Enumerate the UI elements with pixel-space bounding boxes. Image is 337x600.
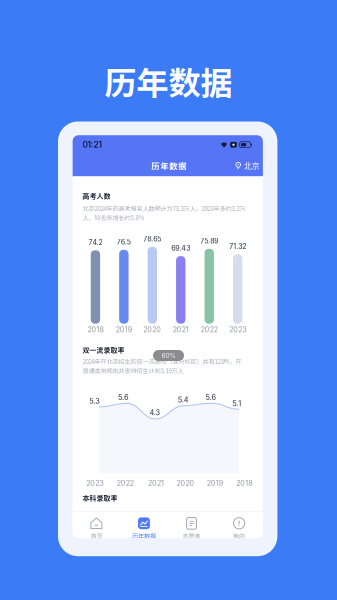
staticText: 首页 [90,531,102,540]
staticText: 2020 [143,325,161,334]
button[interactable]: 志愿表 [168,512,215,544]
staticText: 5.3 [89,397,100,405]
button[interactable]: 我的 [215,512,263,544]
staticText: 76.5 [117,238,131,246]
staticText: 2022 [117,479,134,487]
button[interactable]: 北京 [234,156,261,171]
staticText: 我的 [233,531,245,540]
staticText: 2022 [201,325,218,334]
staticText: 高考人数 [82,191,110,201]
staticText: 74.2 [88,238,102,247]
staticText: 69.43 [171,244,190,252]
staticText: 5.1 [232,399,241,408]
staticText: 5.4 [178,395,189,404]
staticText: 2018 [236,479,252,487]
staticText: 71.32 [229,242,246,251]
staticText: 2019 [116,325,132,334]
staticText: 北京 [244,160,260,171]
staticText: 5.6 [118,393,129,402]
staticText: 本科录取率 [82,493,117,503]
staticText: 北京2024年的高考报名人数预计为73.3万人，2023年多约3.2万 人，较去… [82,204,245,222]
button[interactable]: 历年数据 [120,512,168,544]
staticText: 78.65 [143,235,161,243]
staticText: 2019 [207,479,223,487]
staticText: 2020 [176,479,194,487]
staticText: 历年数据 [104,58,232,104]
staticText: 5.6 [205,393,216,402]
staticText: 2021 [173,325,189,334]
staticText: 75.89 [200,237,218,245]
staticText: 历年数据 [151,159,187,172]
staticText: 历年数据 [132,531,156,540]
button[interactable]: 首页 [73,512,120,544]
staticText: 2021 [148,479,164,487]
staticText: 2023 [86,479,103,487]
staticText: 01:21 [83,140,102,150]
staticText: 2024年在北京招生的双一流高校（含分校区）共有123所，在 普通类常规批共安排… [82,357,241,375]
staticText: 2018 [87,325,103,334]
staticText: 4.3 [150,408,161,417]
staticText: 60% [161,352,175,359]
staticText: 双一流录取率 [82,345,124,355]
staticText: 志愿表 [182,531,200,540]
staticText: 2023 [229,325,246,334]
